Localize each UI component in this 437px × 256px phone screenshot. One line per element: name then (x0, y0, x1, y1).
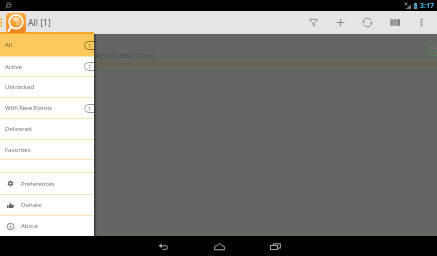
staticText: Favorites (5, 146, 31, 154)
button[interactable]: About (0, 216, 94, 236)
button[interactable]: Refresh (354, 11, 381, 34)
staticText: Untracked (5, 83, 35, 91)
button[interactable]: App icon (6, 13, 26, 33)
button[interactable]: Scan barcode (381, 11, 408, 34)
button[interactable]: Add (327, 11, 354, 34)
staticText: Active (5, 63, 22, 71)
button[interactable]: Home (207, 236, 231, 256)
staticText: 1 (88, 105, 92, 113)
staticText: WEST COLUMBIA, SC 29172 (96, 53, 156, 59)
button[interactable]: Favorites (0, 140, 94, 159)
button[interactable]: Preferences (0, 173, 94, 194)
button[interactable]: More options (408, 11, 435, 34)
button[interactable]: Back (151, 236, 175, 256)
staticText: 3:17 (420, 1, 434, 11)
staticText: Preferences (21, 180, 55, 188)
staticText: All (5, 41, 12, 49)
staticText: Delivered (5, 125, 32, 133)
button[interactable]: All (0, 34, 94, 56)
button[interactable]: Untracked (0, 77, 94, 97)
button[interactable]: Filter (300, 11, 327, 34)
button[interactable]: Donate (0, 195, 94, 215)
staticText: With New Events (5, 104, 53, 112)
staticText: 1 (88, 63, 92, 71)
staticText: 1 (88, 42, 92, 50)
button[interactable]: With New Events (0, 98, 94, 118)
staticText: All [1] (28, 17, 51, 29)
staticText: About (21, 222, 39, 230)
button[interactable]: Active (0, 57, 94, 76)
button[interactable]: Recents (263, 236, 287, 256)
button[interactable]: Open navigation drawer (0, 11, 5, 34)
staticText: 29 (429, 47, 437, 56)
staticText: Donate (21, 201, 42, 209)
button[interactable]: Delivered (0, 119, 94, 139)
